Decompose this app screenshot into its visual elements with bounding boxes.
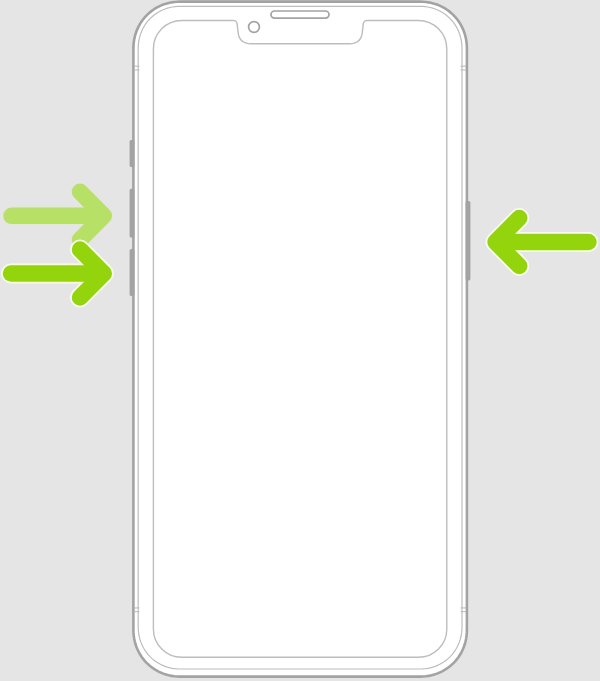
button[interactable]: Press and hold the side button — [481, 211, 600, 273]
button[interactable]: Press and release volume down — [0, 243, 116, 305]
button[interactable]: Side button — [462, 198, 476, 284]
button[interactable]: Ring/silent switch — [126, 138, 140, 169]
button[interactable]: Volume up button — [126, 186, 140, 240]
button[interactable]: Volume down button — [126, 246, 140, 299]
button[interactable]: Press and release volume up — [0, 185, 116, 247]
